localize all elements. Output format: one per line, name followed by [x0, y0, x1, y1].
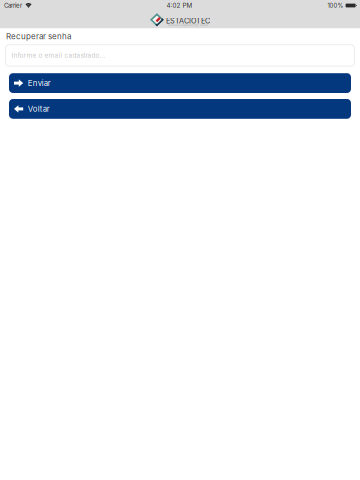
staticText: Recuperar senha	[6, 31, 71, 41]
staticText: Enviar	[28, 78, 51, 88]
staticText: 4:02 PM	[167, 2, 193, 9]
staticText: 100%	[328, 2, 344, 9]
staticText: Voltar	[28, 104, 50, 114]
staticText: ESTACIOTEC	[166, 17, 210, 25]
staticText: Informe o email cadastrado...	[11, 52, 105, 59]
staticText: Carrier	[4, 2, 22, 9]
staticText: ensino superior faz você	[168, 23, 208, 27]
button[interactable]: Enviar	[9, 73, 351, 93]
button[interactable]: Voltar	[9, 99, 351, 119]
